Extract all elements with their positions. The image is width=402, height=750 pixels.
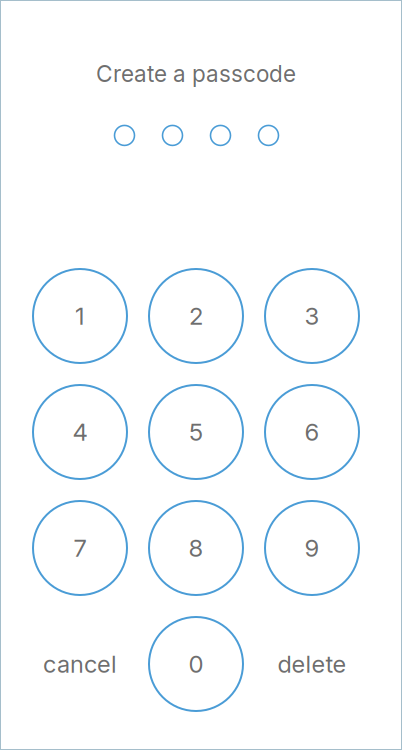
- button[interactable]: 4: [33, 385, 127, 479]
- staticText: 6: [304, 417, 319, 446]
- staticText: Create a passcode: [96, 60, 296, 87]
- staticText: 2: [189, 301, 203, 330]
- staticText: 7: [73, 533, 86, 562]
- staticText: 9: [304, 533, 319, 562]
- staticText: cancel: [43, 650, 117, 678]
- button[interactable]: 1: [33, 269, 127, 363]
- button[interactable]: 7: [33, 501, 127, 595]
- staticText: 4: [72, 417, 87, 446]
- staticText: delete: [277, 650, 346, 678]
- button[interactable]: 0: [149, 617, 243, 711]
- button[interactable]: 6: [265, 385, 359, 479]
- staticText: 5: [189, 417, 203, 446]
- staticText: 8: [188, 533, 203, 562]
- staticText: 0: [188, 649, 203, 678]
- staticText: 3: [304, 301, 319, 330]
- button[interactable]: cancel: [33, 617, 127, 711]
- button[interactable]: 8: [149, 501, 243, 595]
- staticText: 1: [75, 301, 85, 330]
- button[interactable]: 9: [265, 501, 359, 595]
- button[interactable]: delete: [265, 617, 359, 711]
- button[interactable]: 2: [149, 269, 243, 363]
- button[interactable]: 3: [265, 269, 359, 363]
- button[interactable]: 5: [149, 385, 243, 479]
